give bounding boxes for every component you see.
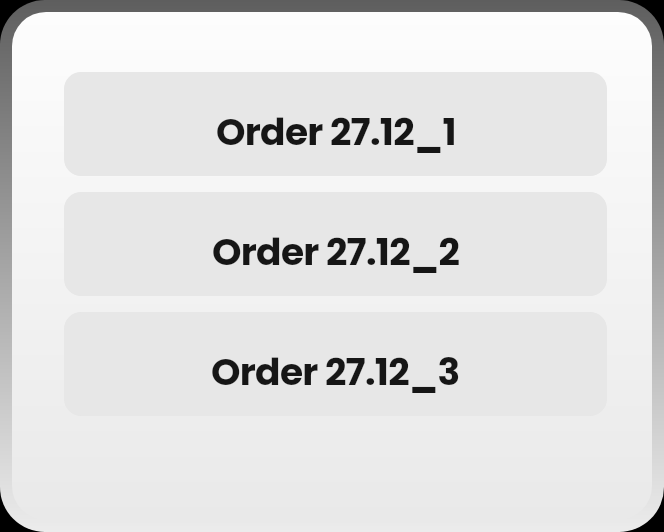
staticText: Order 27.12_3 bbox=[211, 346, 460, 399]
button[interactable]: Order 27.12_3 bbox=[64, 312, 607, 416]
staticText: Order 27.12_2 bbox=[212, 226, 460, 279]
button[interactable]: Order 27.12_1 bbox=[64, 72, 607, 176]
button[interactable]: Order 27.12_2 bbox=[64, 192, 607, 296]
staticText: Order 27.12_1 bbox=[216, 106, 456, 159]
